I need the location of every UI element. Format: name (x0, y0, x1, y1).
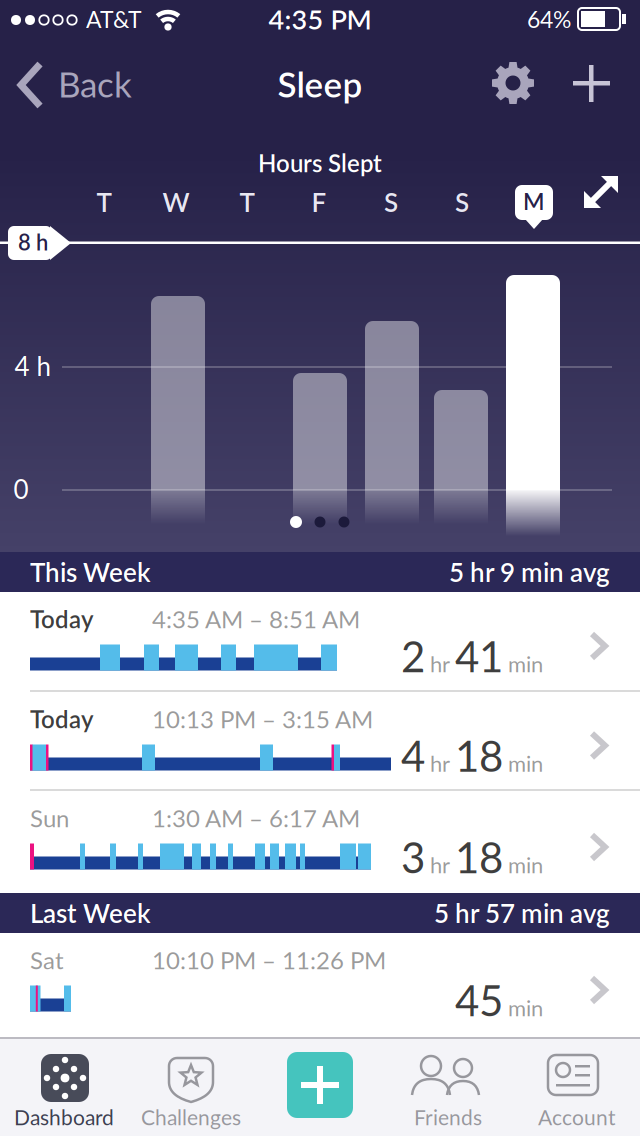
button[interactable]: Sun (0, 791, 640, 893)
button[interactable]: Account (512, 1037, 640, 1136)
staticText: Today (30, 705, 94, 733)
staticText: Sleep (277, 63, 362, 105)
button[interactable] (579, 174, 623, 210)
staticText: 5 hr 9 min avg (449, 556, 610, 588)
staticText: 1:30 AM – 6:17 AM (152, 804, 360, 832)
staticText: 4 (401, 730, 425, 781)
staticText: 10:10 PM – 11:26 PM (152, 946, 386, 974)
staticText: 3 (401, 832, 425, 882)
staticText: W (162, 186, 189, 218)
staticText: S (455, 186, 469, 218)
staticText: hr (430, 750, 450, 776)
staticText: 18 (455, 730, 503, 781)
staticText: Friends (414, 1104, 482, 1130)
staticText: min (508, 994, 543, 1021)
staticText: Hours Slept (258, 149, 382, 177)
staticText: 4:35 PM (268, 3, 371, 35)
button[interactable] (490, 60, 536, 106)
button[interactable]: Today (0, 692, 640, 789)
staticText: Challenges (141, 1104, 241, 1130)
staticText: Account (538, 1104, 616, 1130)
staticText: min (508, 851, 543, 878)
staticText: T (96, 186, 111, 218)
staticText: min (508, 650, 543, 677)
staticText: min (508, 750, 543, 776)
button[interactable]: Friends (384, 1037, 512, 1136)
staticText: 5 hr 57 min avg (434, 897, 610, 929)
button[interactable]: Sat (0, 933, 640, 1037)
staticText: 41 (455, 631, 503, 681)
staticText: M (523, 187, 545, 215)
button[interactable]: Dashboard (0, 1037, 128, 1136)
staticText: 45 (455, 975, 503, 1025)
staticText: Dashboard (14, 1104, 114, 1130)
button[interactable] (567, 59, 615, 107)
button[interactable] (256, 1037, 384, 1136)
staticText: hr (430, 650, 450, 677)
staticText: 8 h (18, 229, 48, 255)
staticText: Sat (30, 946, 64, 974)
staticText: hr (430, 851, 450, 878)
staticText: 18 (455, 832, 503, 882)
staticText: 2 (401, 631, 425, 681)
staticText: S (384, 186, 398, 218)
staticText: Today (30, 605, 94, 633)
staticText: F (311, 186, 326, 218)
button[interactable]: Back (14, 57, 134, 113)
staticText: 4:35 AM – 8:51 AM (152, 605, 360, 633)
button[interactable]: Challenges (128, 1037, 256, 1136)
staticText: Last Week (30, 897, 151, 929)
staticText: 0 (13, 473, 28, 505)
staticText: Back (58, 63, 132, 105)
staticText: Sun (30, 804, 69, 832)
staticText: This Week (30, 556, 151, 588)
button[interactable]: Today (0, 592, 640, 690)
staticText: 64% (527, 5, 571, 33)
staticText: 4 h (14, 350, 51, 382)
staticText: 10:13 PM – 3:15 AM (152, 705, 373, 733)
staticText: AT&T (86, 5, 142, 33)
staticText: T (239, 186, 254, 218)
